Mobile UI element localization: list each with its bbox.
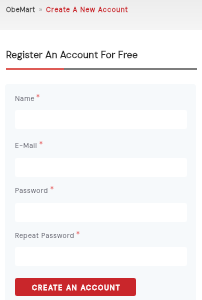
staticText: Name	[15, 94, 35, 103]
button[interactable]: ObeMart	[6, 5, 36, 14]
staticText: *	[76, 230, 80, 241]
staticText: »	[39, 5, 43, 14]
staticText: Repeat Password	[15, 231, 75, 240]
staticText: *	[39, 140, 43, 151]
staticText: Password	[15, 186, 49, 195]
button[interactable]: Create A New Account	[46, 5, 129, 14]
staticText: *	[36, 93, 40, 104]
staticText: Register An Account For Free	[6, 48, 138, 61]
staticText: *	[50, 185, 54, 196]
button[interactable]: CREATE AN ACCOUNT	[15, 278, 136, 296]
staticText: CREATE AN ACCOUNT	[32, 283, 121, 292]
staticText: E-Mail	[15, 141, 38, 150]
